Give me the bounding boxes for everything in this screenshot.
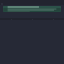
button[interactable]: [3, 6, 61, 12]
